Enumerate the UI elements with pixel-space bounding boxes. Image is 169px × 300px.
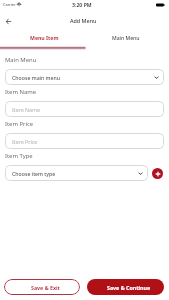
staticText: Item Name (5, 88, 37, 96)
button[interactable]: Item Price (12, 133, 159, 149)
staticText: Main Menu (112, 35, 140, 42)
staticText: Item Price (12, 138, 38, 145)
staticText: Save & Continue (107, 284, 151, 291)
staticText: Item Price (5, 120, 34, 128)
staticText: Menu Item (30, 34, 59, 41)
staticText: Main Menu (5, 56, 37, 64)
button[interactable]: Save & Exit (4, 279, 80, 295)
staticText: Choose main menu (12, 74, 61, 81)
button[interactable]: Choose main menu (12, 69, 159, 85)
staticText: 3:20 PM (72, 1, 92, 8)
staticText: Carrier (3, 2, 16, 7)
staticText: Item Type (5, 152, 33, 160)
staticText: Add Menu (70, 17, 97, 24)
button[interactable]: Back (2, 15, 14, 27)
staticText: Item Name (12, 106, 40, 113)
button[interactable]: Save & Continue (87, 279, 164, 295)
button[interactable]: Main Menu (84, 0, 169, 50)
button[interactable]: Choose item type (12, 165, 143, 181)
button[interactable]: Menu Item (0, 0, 84, 50)
staticText: Save & Exit (31, 284, 60, 291)
button[interactable]: Item Name (12, 101, 159, 117)
button[interactable]: Add item type (152, 168, 163, 179)
staticText: Choose item type (12, 170, 56, 177)
